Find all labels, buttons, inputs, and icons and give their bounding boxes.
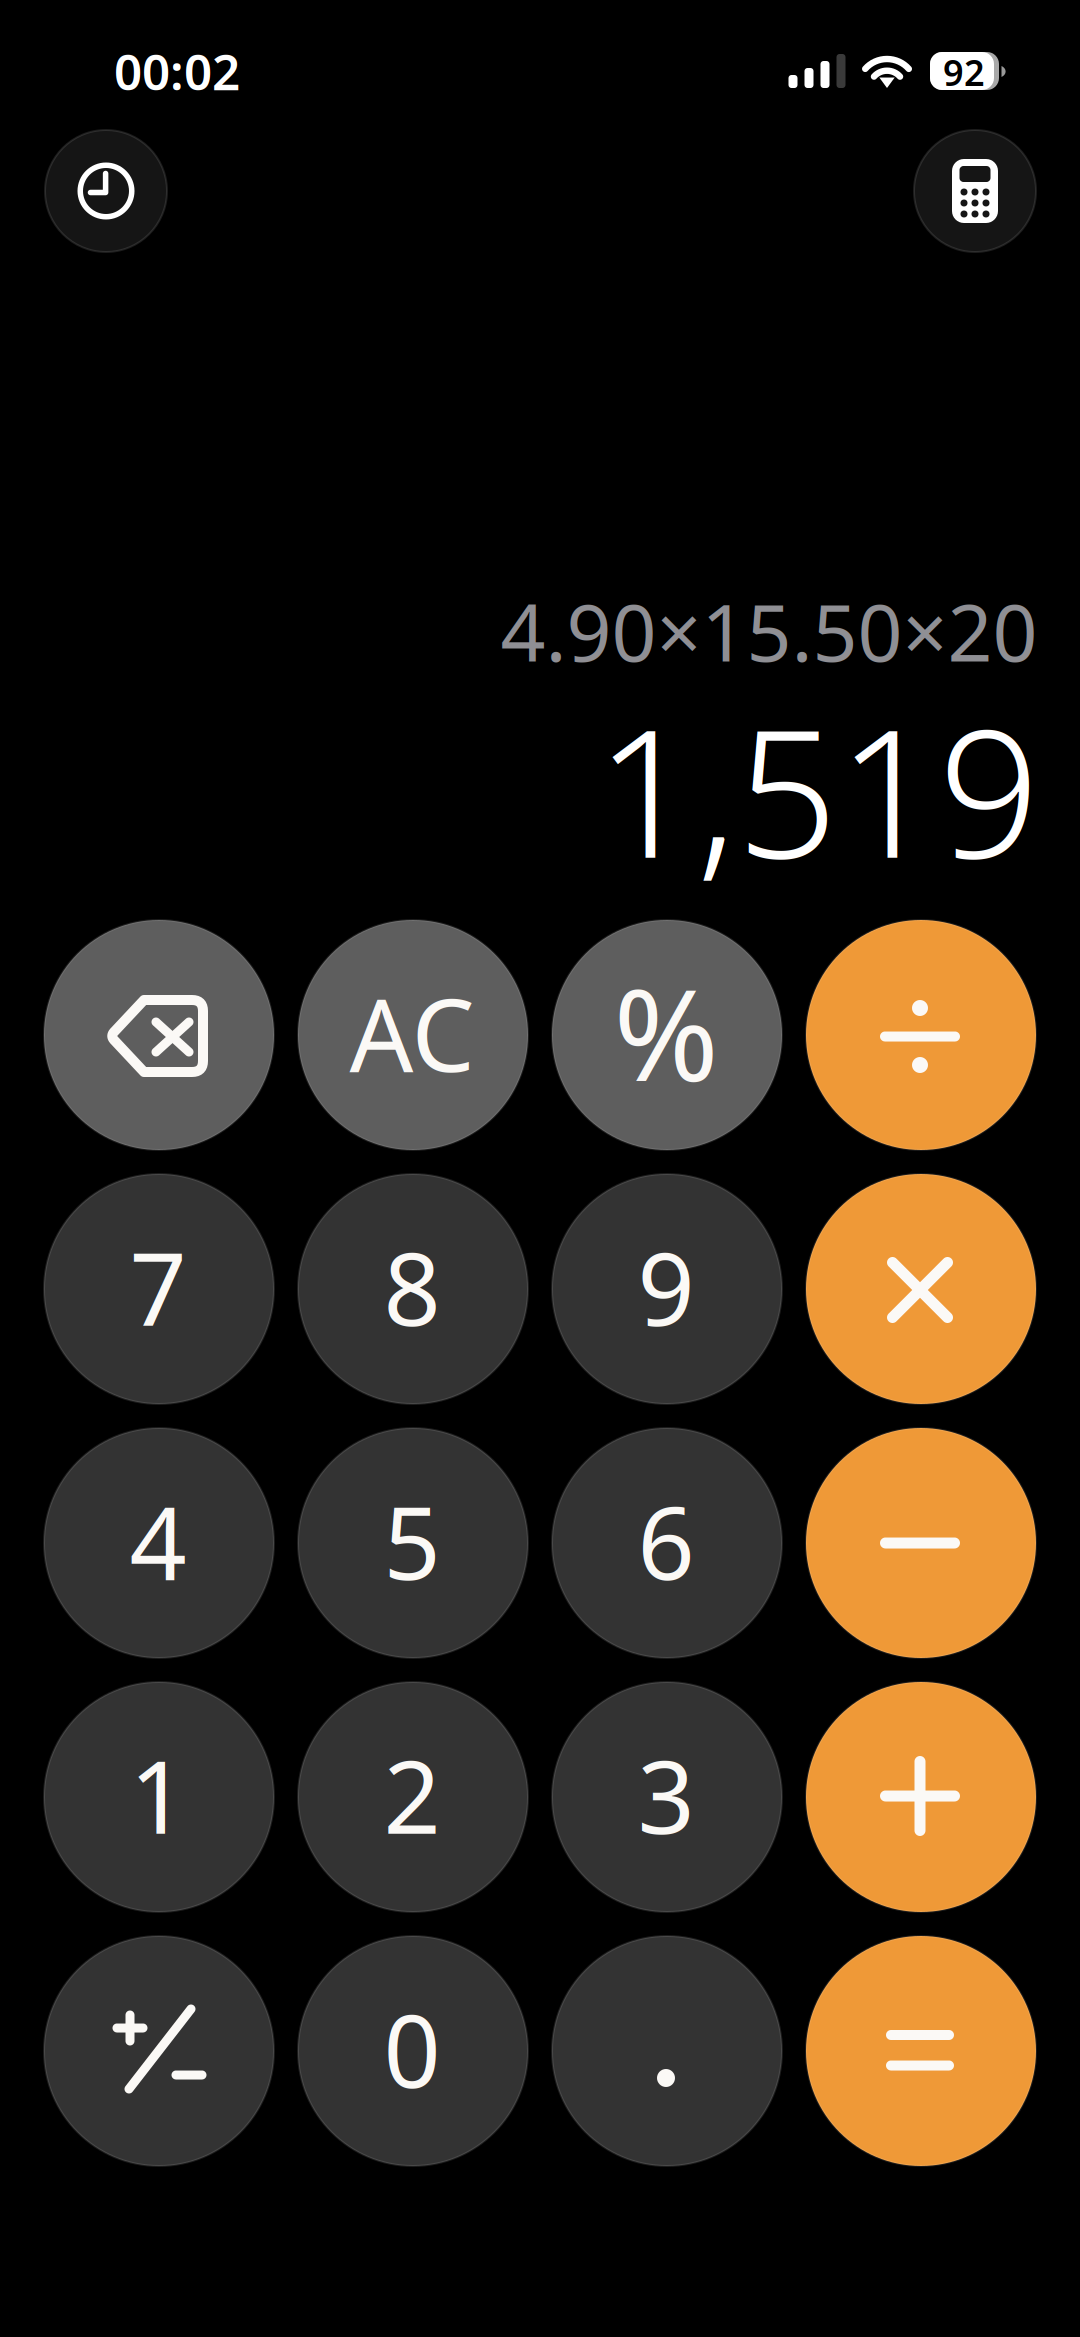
button[interactable]: Divide (806, 920, 1036, 1150)
button[interactable]: Multiply (806, 1174, 1036, 1404)
staticText: 1 (129, 1729, 186, 1861)
button[interactable]: Decimal point (552, 1936, 782, 2166)
button[interactable]: Plus minus (44, 1936, 274, 2166)
staticText: 0 (383, 1983, 440, 2115)
button[interactable]: 4 (44, 1428, 274, 1658)
staticText: AC (349, 967, 474, 1099)
staticText: 8 (383, 1221, 440, 1353)
staticText: 7 (129, 1221, 186, 1353)
button[interactable]: Subtract (806, 1428, 1036, 1658)
staticText: 5 (383, 1475, 440, 1607)
staticText: 6 (637, 1475, 694, 1607)
staticText: 92 (943, 48, 985, 96)
button[interactable]: History (45, 130, 167, 252)
staticText: 4.90×15.50×20 (500, 579, 1037, 683)
staticText: 1,519 (595, 671, 1039, 907)
button[interactable]: % (552, 920, 782, 1150)
button[interactable]: 6 (552, 1428, 782, 1658)
staticText: 3 (637, 1729, 694, 1861)
staticText: 00:02 (114, 38, 240, 104)
button[interactable]: 0 (298, 1936, 528, 2166)
button[interactable]: Add (806, 1682, 1036, 1912)
button[interactable]: 3 (552, 1682, 782, 1912)
button[interactable]: 1 (44, 1682, 274, 1912)
staticText: 4 (129, 1475, 186, 1607)
staticText: 9 (637, 1221, 694, 1353)
button[interactable]: Equals (806, 1936, 1036, 2166)
button[interactable]: Calculator (914, 130, 1036, 252)
staticText: % (613, 948, 718, 1116)
staticText: 2 (383, 1729, 440, 1861)
button[interactable]: 8 (298, 1174, 528, 1404)
button[interactable]: AC (298, 920, 528, 1150)
button[interactable]: 9 (552, 1174, 782, 1404)
button[interactable]: 7 (44, 1174, 274, 1404)
button[interactable]: 2 (298, 1682, 528, 1912)
button[interactable]: Delete (44, 920, 274, 1150)
button[interactable]: 5 (298, 1428, 528, 1658)
